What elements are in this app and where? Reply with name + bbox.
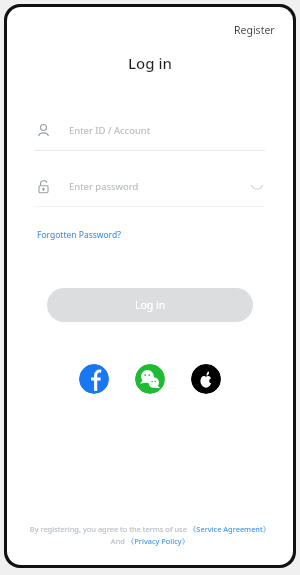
button[interactable]: Enter password — [35, 173, 265, 207]
staticText: Register — [234, 23, 275, 37]
staticText: By registering, you agree to the terms o… — [29, 524, 271, 547]
button[interactable]: Register — [232, 21, 277, 39]
button[interactable]: By registering, you agree to the terms o… — [29, 524, 271, 547]
button[interactable]: Enter ID / Account — [35, 117, 265, 151]
button[interactable]: Log in — [47, 288, 253, 322]
staticText: Forgotten Password? — [37, 229, 121, 241]
staticText: Log in — [128, 53, 172, 73]
staticText: Enter password — [69, 180, 139, 193]
button[interactable]: Show password — [249, 178, 265, 194]
staticText: Log in — [135, 298, 166, 312]
button[interactable]: Sign in with Facebook — [79, 364, 109, 394]
button[interactable]: Forgotten Password? — [35, 227, 123, 243]
staticText: Enter ID / Account — [69, 124, 151, 137]
button[interactable]: Sign in with Apple — [191, 364, 221, 394]
button[interactable]: Sign in with WeChat — [135, 364, 165, 394]
